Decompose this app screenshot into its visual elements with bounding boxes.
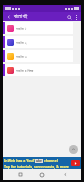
button[interactable]: Back: [59, 169, 71, 180]
button[interactable]: Search: [65, 13, 73, 21]
staticText: Tap for tutorials, screencasts, & more: [4, 164, 69, 169]
button[interactable]: InWeb has a YouT: [3, 157, 81, 169]
button[interactable]: Play on YouTube: [71, 160, 80, 166]
button[interactable]: অধ্যায় ১: [3, 22, 81, 34]
staticText: InWeb has a YouT: [4, 158, 35, 163]
button[interactable]: More options: [73, 14, 79, 20]
staticText: অধ্যায় ৪ বিষয়: [16, 68, 80, 73]
staticText: channel: [43, 158, 58, 163]
button[interactable]: অধ্যায় ৩: [3, 50, 81, 62]
button[interactable]: Back: [5, 13, 12, 20]
button[interactable]: Scroll to top: [69, 145, 78, 154]
staticText: ube: [36, 159, 42, 163]
button[interactable]: Recent apps: [14, 169, 26, 180]
staticText: অধ্যায় ৩: [16, 54, 73, 59]
staticText: অধ্যায় ১: [16, 26, 73, 31]
button[interactable]: অধ্যায় ২: [3, 36, 81, 48]
button[interactable]: Home: [36, 169, 48, 180]
button[interactable]: অধ্যায় ৪ বিষয়: [3, 64, 81, 76]
staticText: বাংলা বই: [14, 13, 65, 20]
staticText: অধ্যায় ২: [16, 40, 73, 45]
